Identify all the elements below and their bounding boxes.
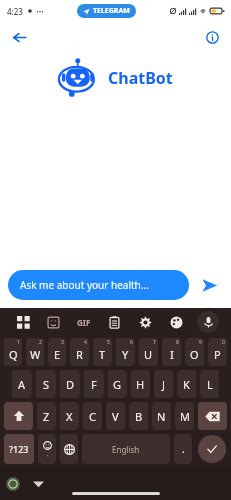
staticText: 1 <box>17 339 20 346</box>
button[interactable]: Ask me about your health... <box>8 270 189 300</box>
button[interactable]: 7 <box>139 338 158 366</box>
button[interactable]: Enter <box>198 435 226 463</box>
staticText: S <box>43 377 50 392</box>
staticText: 5 <box>107 339 110 346</box>
staticText: 4 <box>84 339 87 346</box>
button[interactable]: Theme <box>161 308 192 336</box>
button[interactable]: J <box>154 370 173 398</box>
staticText: U <box>144 347 153 362</box>
button[interactable]: A <box>12 370 32 398</box>
staticText: H <box>136 377 145 392</box>
staticText: V <box>112 409 119 424</box>
staticText: TELEGRAM <box>93 6 130 16</box>
button[interactable]: 6 <box>116 338 135 366</box>
button[interactable]: Info <box>199 24 225 50</box>
staticText: G <box>113 377 122 392</box>
button[interactable]: Assistant <box>4 475 22 493</box>
button[interactable]: Back <box>6 24 32 50</box>
staticText: X <box>66 409 73 424</box>
staticText: B <box>135 409 143 424</box>
staticText: 9 <box>199 339 202 346</box>
staticText: E <box>54 347 61 362</box>
button[interactable]: Backspace <box>198 402 227 430</box>
button[interactable]: 0 <box>208 338 227 366</box>
button[interactable]: L <box>200 370 219 398</box>
button[interactable]: 5 <box>93 338 112 366</box>
staticText: Ask me about your health... <box>20 278 149 292</box>
button[interactable]: M <box>175 402 194 430</box>
staticText: Z <box>43 409 50 424</box>
button[interactable]: Z <box>37 402 56 430</box>
button[interactable]: Stickers <box>38 308 68 336</box>
staticText: Q <box>9 347 18 362</box>
staticText: N <box>157 409 166 424</box>
button[interactable]: D <box>60 370 80 398</box>
staticText: . <box>182 442 185 456</box>
button[interactable]: H <box>131 370 150 398</box>
button[interactable]: 3 <box>48 338 66 366</box>
staticText: Y <box>122 347 129 362</box>
button[interactable]: 2 <box>26 338 44 366</box>
button[interactable]: Settings <box>130 308 161 336</box>
staticText: M <box>180 409 190 424</box>
button[interactable]: ?123 <box>4 434 34 464</box>
staticText: 8 <box>176 339 179 346</box>
button[interactable]: 9 <box>185 338 204 366</box>
staticText: 6 <box>130 339 133 346</box>
button[interactable]: Hide keyboard <box>28 474 48 494</box>
staticText: J <box>162 377 166 392</box>
button[interactable]: Emoji <box>38 434 56 464</box>
button[interactable]: . <box>174 434 192 464</box>
staticText: ChatBot <box>108 67 173 89</box>
button[interactable]: 4 <box>70 338 89 366</box>
button[interactable]: English <box>82 434 170 464</box>
staticText: T <box>99 347 106 362</box>
button[interactable]: C <box>83 402 102 430</box>
button[interactable]: G <box>108 370 127 398</box>
staticText: ?123 <box>9 443 29 455</box>
button[interactable]: N <box>152 402 171 430</box>
button[interactable]: V <box>106 402 125 430</box>
staticText: O <box>190 347 199 362</box>
button[interactable]: K <box>177 370 196 398</box>
button[interactable]: Apps <box>8 308 38 336</box>
staticText: I <box>170 347 174 362</box>
staticText: L <box>207 377 213 392</box>
staticText: , <box>47 450 49 458</box>
button[interactable]: GIF <box>68 317 99 328</box>
staticText: R <box>76 347 83 362</box>
button[interactable]: X <box>60 402 79 430</box>
staticText: 4:23 <box>7 6 23 17</box>
staticText: K <box>183 377 190 392</box>
button[interactable]: Clipboard <box>99 308 130 336</box>
button[interactable]: TELEGRAM <box>77 4 136 18</box>
button[interactable]: S <box>36 370 56 398</box>
button[interactable]: B <box>129 402 148 430</box>
button[interactable]: Voice input <box>197 311 219 333</box>
button[interactable]: Shift <box>4 402 33 430</box>
staticText: D <box>66 377 75 392</box>
staticText: P <box>214 347 221 362</box>
button[interactable]: Change language <box>60 434 78 464</box>
button[interactable]: F <box>84 370 104 398</box>
staticText: A <box>18 377 26 392</box>
staticText: W <box>30 347 41 362</box>
staticText: 3 <box>61 339 64 346</box>
staticText: C <box>89 409 96 424</box>
staticText: English <box>112 444 140 455</box>
staticText: GIF <box>77 317 91 328</box>
button[interactable]: 1 <box>4 338 22 366</box>
button[interactable]: 8 <box>162 338 181 366</box>
staticText: 7 <box>153 339 156 346</box>
staticText: F <box>91 377 97 392</box>
button[interactable]: Send <box>195 271 223 299</box>
staticText: 2 <box>39 339 42 346</box>
staticText: 0 <box>222 339 225 346</box>
